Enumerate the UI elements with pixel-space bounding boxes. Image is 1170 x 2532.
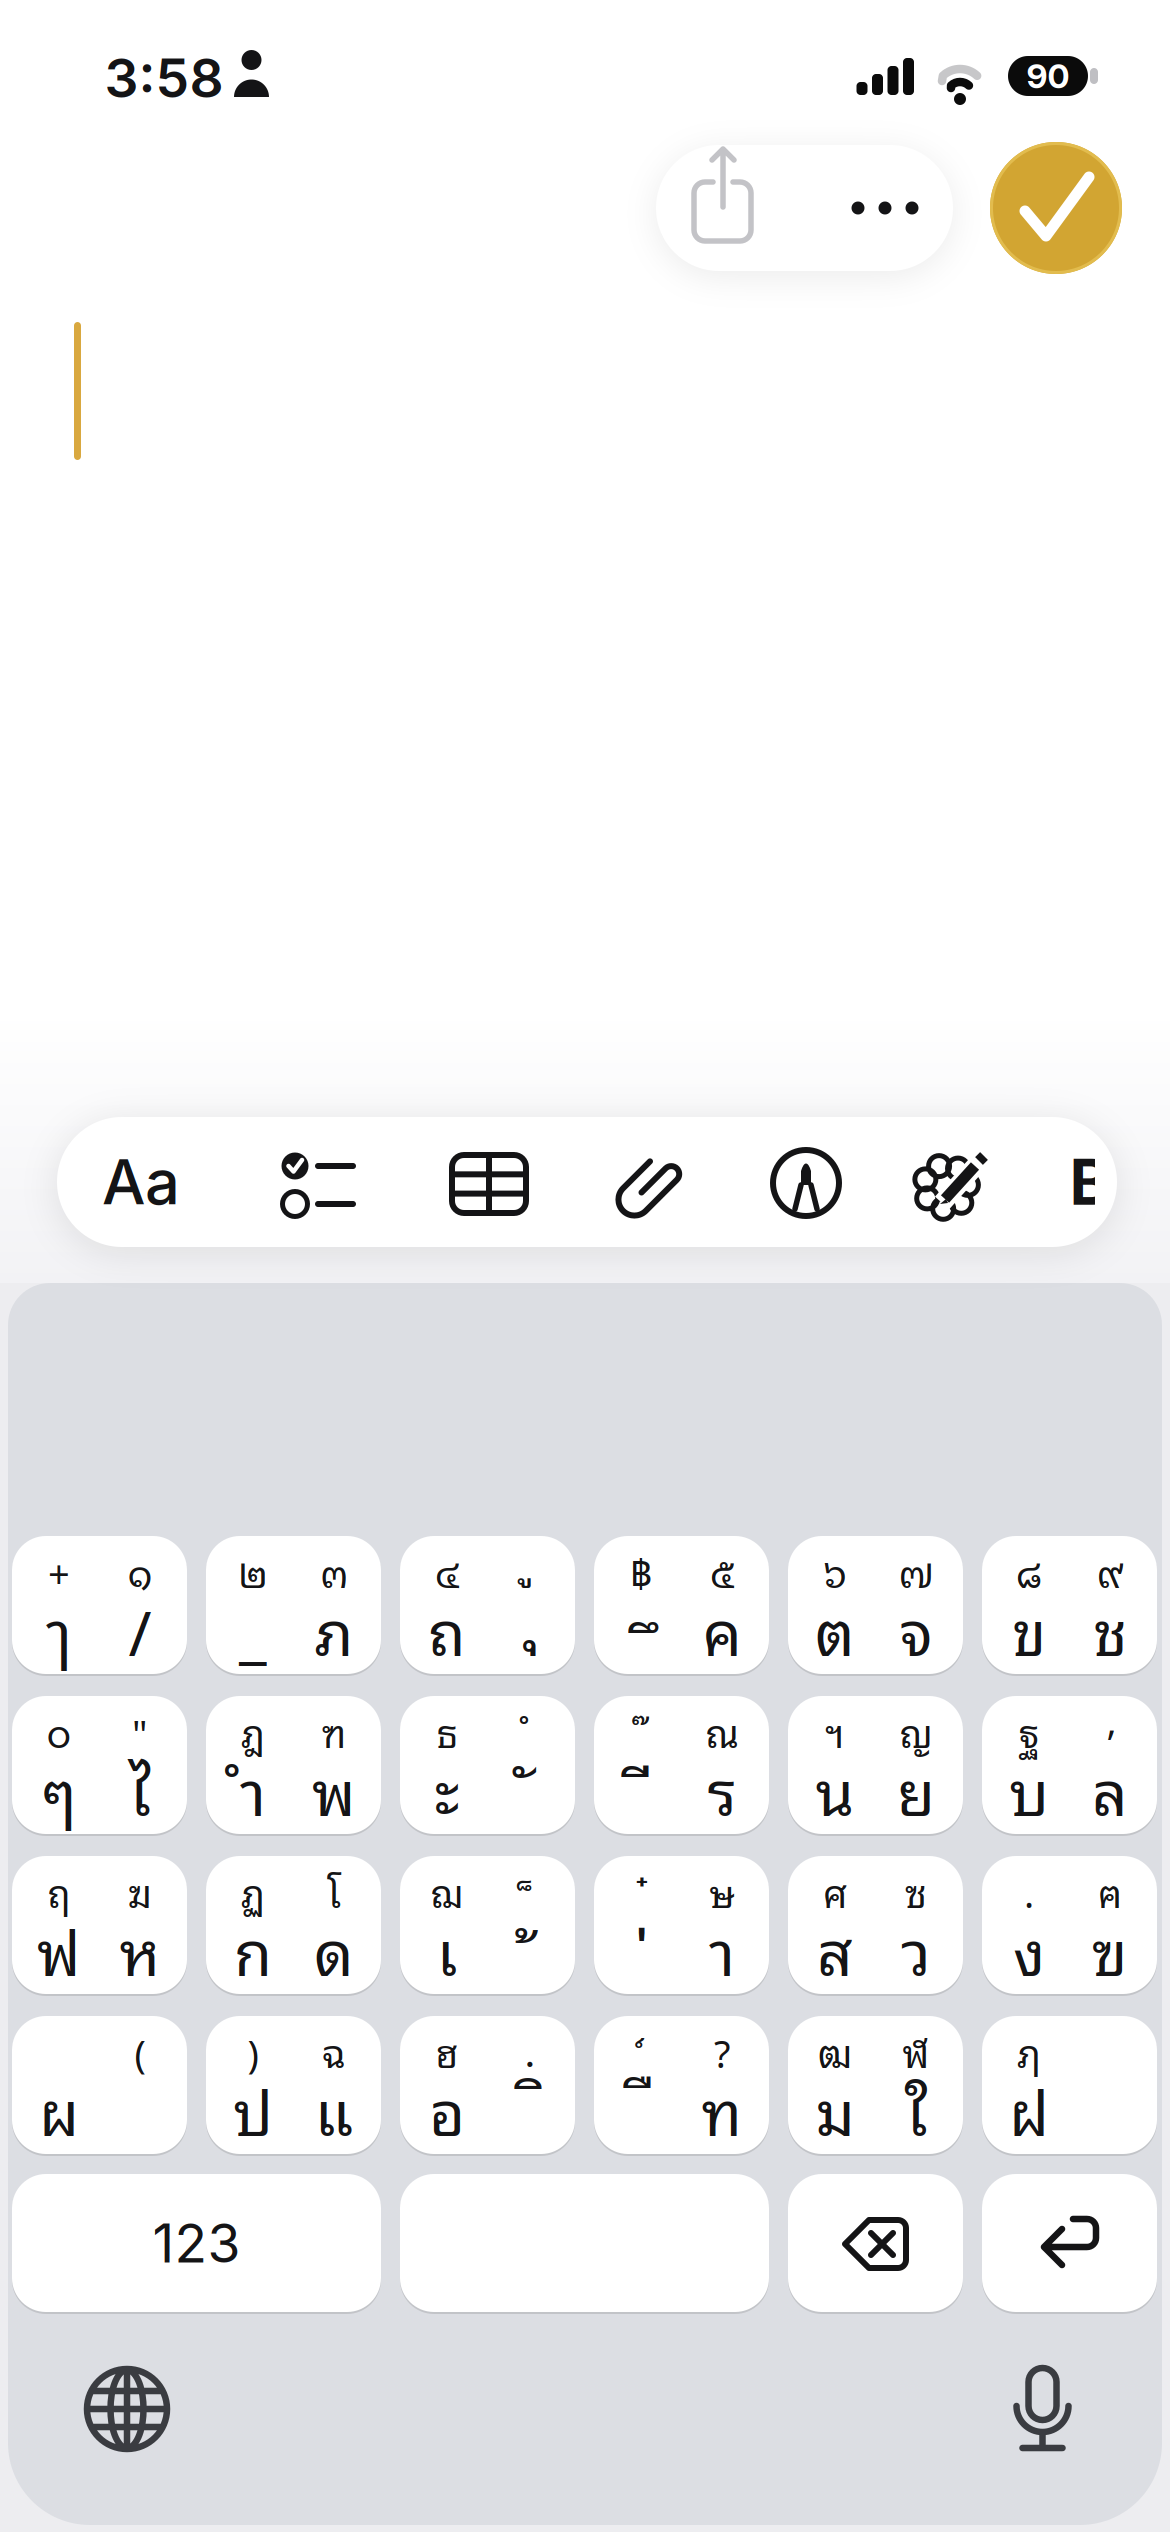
button[interactable]: Dictate: [0, 0, 1170, 2532]
staticText: ฝ: [1009, 2058, 1049, 2158]
staticText: +: [48, 1541, 70, 1601]
button[interactable]: Markup: [756, 1133, 856, 1233]
button[interactable]: เ: [400, 1856, 575, 1994]
button[interactable]: ฝ: [982, 2016, 1157, 2154]
button[interactable]: Delete: [788, 2174, 963, 2312]
staticText: ฟ: [37, 1898, 81, 1998]
staticText: ฮ: [435, 2021, 458, 2081]
staticText: ย: [897, 1738, 935, 1838]
staticText: ๖: [823, 1541, 846, 1601]
staticText: 123: [152, 2211, 240, 2275]
staticText: ๅ: [46, 1578, 72, 1678]
button[interactable]: ึ: [594, 1536, 769, 1674]
button[interactable]: ป: [206, 2016, 381, 2154]
staticText: ฐ: [1018, 1701, 1039, 1761]
staticText: ซ: [905, 1861, 927, 1921]
staticText: ฃ: [1092, 1898, 1128, 1998]
button[interactable]: _: [206, 1536, 381, 1674]
staticText: ศ: [823, 1861, 847, 1921]
staticText: ๕: [710, 1541, 734, 1601]
staticText: ฦ: [1017, 2021, 1041, 2081]
staticText: ู: [524, 1529, 534, 1589]
staticText: บ: [1009, 1738, 1049, 1838]
staticText: ่: [634, 1903, 650, 2003]
button[interactable]: ๅ: [12, 1536, 187, 1674]
button[interactable]: ำ: [206, 1696, 381, 1834]
staticText: ล: [1092, 1738, 1128, 1838]
button[interactable]: ผ: [12, 2016, 187, 2154]
staticText: ใ: [904, 2058, 927, 2158]
button[interactable]: Share: [691, 141, 755, 251]
staticText: ๘: [1016, 1541, 1042, 1601]
button[interactable]: ก: [206, 1856, 381, 1994]
button[interactable]: อ: [400, 2016, 575, 2154]
button[interactable]: Table: [439, 1134, 539, 1234]
staticText: ต: [815, 1578, 855, 1678]
button[interactable]: Checklist: [268, 1135, 368, 1235]
staticText: ๒: [238, 1541, 268, 1601]
staticText: ุ: [525, 1559, 541, 1659]
button[interactable]: Writing Tools: [902, 1133, 1002, 1233]
button[interactable]: ถ: [400, 1536, 575, 1674]
staticText: ึ: [645, 1595, 661, 1695]
staticText: ผ: [39, 2058, 79, 2158]
button[interactable]: ื: [594, 2016, 769, 2154]
button[interactable]: ฟ: [12, 1856, 187, 1994]
staticText: แ: [314, 2058, 353, 2158]
staticText: ฉ: [322, 2021, 346, 2081]
staticText: ณ: [705, 1701, 738, 1761]
button[interactable]: Format: [102, 1145, 180, 1219]
staticText: ก: [234, 1898, 272, 1998]
staticText: ไ: [129, 1738, 151, 1838]
staticText: ม: [815, 2058, 854, 2158]
staticText: ฒ: [818, 2021, 852, 2081]
staticText: ษ: [709, 1861, 735, 1921]
staticText: ส: [817, 1898, 853, 1998]
button[interactable]: Attach: [600, 1134, 700, 1234]
button[interactable]: ง: [982, 1856, 1157, 1994]
button[interactable]: Next keyboard: [0, 0, 1170, 2532]
staticText: ง: [1013, 1898, 1045, 1998]
staticText: ฬ: [902, 2021, 929, 2081]
button[interactable]: ี: [594, 1696, 769, 1834]
staticText: ้: [524, 1905, 540, 2005]
button[interactable]: ส: [788, 1856, 963, 1994]
staticText: ๗: [898, 1541, 933, 1601]
staticText: Aa: [102, 1145, 180, 1219]
staticText: จ: [899, 1578, 932, 1678]
staticText: B: [1069, 1144, 1110, 1220]
button[interactable]: บ: [982, 1696, 1157, 1834]
staticText: ฅ: [1098, 1861, 1122, 1921]
staticText: (: [134, 2021, 145, 2081]
staticText: ข: [1012, 1578, 1046, 1678]
staticText: ์: [636, 2026, 646, 2086]
staticText: ๆ: [42, 1738, 76, 1838]
button[interactable]: ข: [982, 1536, 1157, 1674]
staticText: ท: [701, 2058, 742, 2158]
button[interactable]: ม: [788, 2016, 963, 2154]
staticText: ื: [640, 2050, 656, 2150]
button[interactable]: น: [788, 1696, 963, 1834]
staticText: ำ: [240, 1738, 266, 1838]
button[interactable]: 123: [12, 2174, 381, 2312]
staticText: ฑ: [322, 1701, 346, 1761]
staticText: ค: [702, 1578, 741, 1678]
staticText: ๔: [435, 1541, 459, 1601]
staticText: /: [128, 1578, 151, 1678]
button[interactable]: ะ: [400, 1696, 575, 1834]
staticText: ช: [1093, 1578, 1127, 1678]
staticText: เ: [436, 1898, 457, 1998]
staticText: ญ: [899, 1701, 932, 1761]
staticText: 3:58: [104, 46, 223, 110]
button[interactable]: ๆ: [12, 1696, 187, 1834]
staticText: ๊: [639, 1703, 649, 1763]
button[interactable]: More: [840, 163, 930, 253]
button[interactable]: Return: [982, 2174, 1157, 2312]
staticText: ะ: [434, 1738, 459, 1838]
button[interactable]: ต: [788, 1536, 963, 1674]
staticText: ว: [901, 1898, 931, 1998]
button[interactable]: Space: [400, 2174, 769, 2312]
button[interactable]: Done: [990, 142, 1122, 274]
staticText: ฯ: [825, 1701, 844, 1761]
button[interactable]: ่: [594, 1856, 769, 1994]
